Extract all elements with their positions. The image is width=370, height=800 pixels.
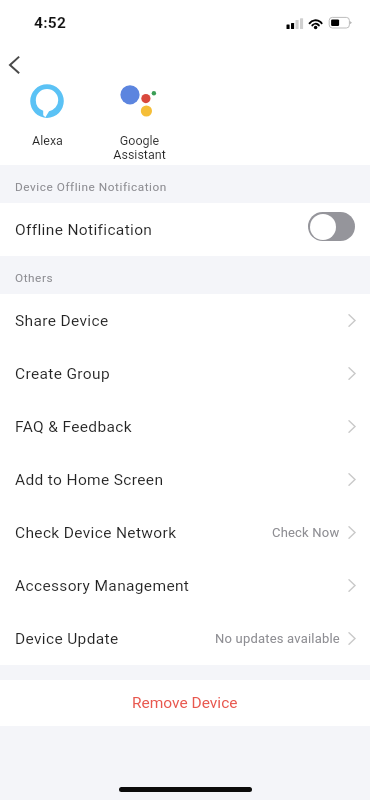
staticText: Create Group bbox=[15, 365, 110, 383]
button[interactable]: Alexa bbox=[1, 85, 93, 148]
staticText: No updates available bbox=[215, 631, 340, 646]
staticText: Offline Notification bbox=[15, 221, 153, 239]
button[interactable]: Accessory Management bbox=[0, 559, 370, 612]
button[interactable]: Device Update bbox=[0, 612, 370, 665]
staticText: Check Now bbox=[272, 525, 340, 540]
button[interactable]: Add to Home Screen bbox=[0, 453, 370, 506]
staticText: Device Offline Notification bbox=[15, 180, 167, 194]
staticText: Add to Home Screen bbox=[15, 471, 164, 489]
button[interactable] bbox=[308, 212, 355, 241]
staticText: Device Update bbox=[15, 630, 119, 648]
button[interactable]: Remove Device bbox=[0, 680, 370, 726]
staticText: Share Device bbox=[15, 312, 109, 330]
button[interactable]: Share Device bbox=[0, 294, 370, 347]
button[interactable]: Google Assistant bbox=[93, 85, 185, 162]
staticText: 4:52 bbox=[34, 14, 67, 32]
button[interactable]: Check Device Network bbox=[0, 506, 370, 559]
staticText: FAQ & Feedback bbox=[15, 418, 132, 436]
staticText: Alexa bbox=[32, 133, 63, 148]
button[interactable]: Back bbox=[0, 52, 38, 86]
button[interactable]: Offline Notification bbox=[0, 203, 370, 256]
button[interactable]: Create Group bbox=[0, 347, 370, 400]
staticText: Accessory Management bbox=[15, 577, 190, 595]
button[interactable]: FAQ & Feedback bbox=[0, 400, 370, 453]
staticText: Google Assistant bbox=[113, 133, 166, 162]
staticText: Remove Device bbox=[132, 694, 238, 712]
staticText: Check Device Network bbox=[15, 524, 177, 542]
staticText: Others bbox=[15, 271, 54, 285]
